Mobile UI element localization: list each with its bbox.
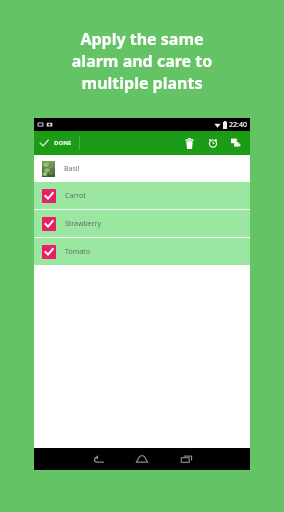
- button[interactable]: Back: [76, 448, 120, 470]
- button[interactable]: Strawberry: [34, 210, 250, 237]
- button[interactable]: Copy care settings: [224, 131, 247, 155]
- staticText: 22:40: [229, 120, 247, 130]
- button[interactable]: Home: [120, 448, 164, 470]
- button[interactable]: Carrot: [34, 182, 250, 209]
- staticText: DONE: [54, 139, 72, 147]
- staticText: Basil: [64, 164, 80, 174]
- button[interactable]: Tomato: [34, 238, 250, 265]
- button[interactable]: Set alarm: [201, 131, 224, 155]
- staticText: Apply the same alarm and care to multipl…: [0, 28, 284, 94]
- staticText: Tomato: [65, 247, 90, 257]
- button[interactable]: Basil: [34, 155, 250, 182]
- staticText: Carrot: [65, 191, 86, 201]
- button[interactable]: DONE: [34, 131, 84, 155]
- button[interactable]: Delete: [178, 131, 201, 155]
- staticText: Strawberry: [65, 219, 102, 229]
- button[interactable]: Recent apps: [164, 448, 208, 470]
